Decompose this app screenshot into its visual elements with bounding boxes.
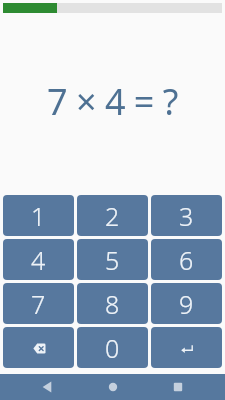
staticText: 6 [179, 243, 194, 277]
staticText: 2 [105, 199, 120, 233]
staticText: 7 × 4 = ? [47, 77, 178, 126]
staticText: 8 [105, 287, 120, 321]
button[interactable]: 2 [77, 195, 148, 236]
button[interactable]: 8 [77, 283, 148, 324]
button[interactable] [3, 327, 74, 368]
staticText: 5 [105, 243, 120, 277]
button[interactable]: 7 [3, 283, 74, 324]
button[interactable] [35, 375, 59, 399]
staticText: 3 [179, 199, 194, 233]
button[interactable]: 5 [77, 239, 148, 280]
button[interactable] [101, 375, 125, 399]
button[interactable]: 1 [3, 195, 74, 236]
staticText: 0 [105, 331, 120, 365]
staticText: 1 [31, 199, 46, 233]
button[interactable]: 3 [151, 195, 222, 236]
button[interactable] [166, 375, 190, 399]
staticText: 4 [31, 243, 46, 277]
button[interactable]: 0 [77, 327, 148, 368]
button[interactable]: 9 [151, 283, 222, 324]
button[interactable] [151, 327, 222, 368]
button[interactable]: 6 [151, 239, 222, 280]
button[interactable]: 4 [3, 239, 74, 280]
staticText: 9 [179, 287, 194, 321]
staticText: 7 [31, 287, 46, 321]
